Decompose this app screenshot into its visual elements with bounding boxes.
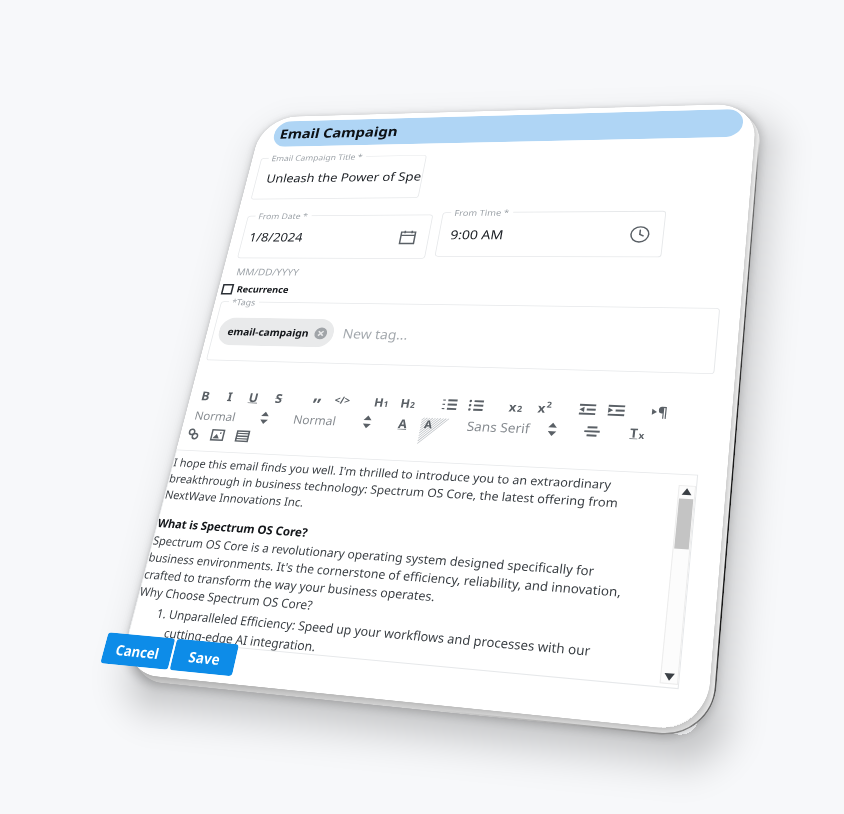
button[interactable]: Format xyxy=(602,400,630,420)
staticText: business environments. It's the cornerst… xyxy=(147,549,622,601)
button[interactable]: Normal xyxy=(292,409,338,429)
staticText: I xyxy=(226,388,235,404)
staticText: *Tags xyxy=(231,296,257,308)
staticText: Email Campaign Title * xyxy=(270,151,364,163)
button[interactable]: Format xyxy=(436,394,463,414)
staticText: Unleash the Power of Spe xyxy=(265,168,423,186)
button[interactable]: Format xyxy=(251,408,277,427)
staticText: x xyxy=(508,398,519,415)
button[interactable]: Format xyxy=(578,420,606,441)
staticText: Spectrum OS Core is a revolutionary oper… xyxy=(151,532,596,580)
staticText: From Date * xyxy=(257,210,310,221)
button[interactable]: Format xyxy=(204,425,230,444)
staticText: cutting-edge AI integration. xyxy=(162,624,318,655)
staticText: x xyxy=(537,399,547,416)
staticText: 1/8/2024 xyxy=(247,229,305,245)
staticText: 1 xyxy=(382,398,390,409)
staticText: A xyxy=(423,417,434,432)
staticText: Normal xyxy=(193,407,238,424)
button[interactable]: Pick date xyxy=(397,229,418,245)
button[interactable]: Format xyxy=(305,390,331,409)
staticText: Sans Serif xyxy=(466,417,531,437)
staticText: Email Campaign xyxy=(278,122,400,143)
button[interactable]: Format xyxy=(329,391,355,410)
button[interactable]: Format xyxy=(193,386,218,405)
staticText: 9:00 AM xyxy=(449,226,505,243)
staticText: Save xyxy=(187,647,222,669)
button[interactable]: Recurrence xyxy=(220,283,291,296)
button[interactable]: Format xyxy=(229,426,255,445)
staticText: 1. Unparalleled Efficiency: Speed up you… xyxy=(155,605,591,660)
button[interactable]: Format xyxy=(646,401,674,422)
button[interactable]: Format xyxy=(415,414,441,434)
button[interactable]: Format xyxy=(573,399,601,419)
staticText: ” xyxy=(311,393,323,411)
staticText: Why Choose Spectrum OS Core? xyxy=(138,583,315,614)
button[interactable]: Format xyxy=(538,419,566,439)
staticText: B xyxy=(200,387,212,404)
staticText: MM/DD/YYYY xyxy=(235,266,301,279)
button[interactable]: Save xyxy=(169,639,239,676)
staticText: NextWave Innovations Inc. xyxy=(163,486,306,510)
staticText: From Time * xyxy=(453,207,511,218)
staticText: x xyxy=(638,429,645,442)
staticText: U xyxy=(247,389,261,405)
staticText: S xyxy=(274,390,285,406)
button[interactable]: Format xyxy=(502,397,529,416)
button[interactable]: Format xyxy=(217,387,243,406)
button[interactable]: email-campaign xyxy=(215,317,337,348)
button[interactable]: Sans Serif xyxy=(465,416,532,438)
button[interactable]: Email Campaign xyxy=(271,109,744,147)
staticText: I hope this email finds you well. I'm th… xyxy=(172,454,613,493)
staticText: ¶ xyxy=(657,403,669,421)
button[interactable]: Pick time xyxy=(629,226,651,243)
button[interactable]: Cancel xyxy=(100,632,175,670)
button[interactable]: Format xyxy=(623,422,651,443)
staticText: Normal xyxy=(292,411,338,429)
staticText: </> xyxy=(333,393,351,407)
staticText: crafted to transform the way your busine… xyxy=(142,566,437,605)
button[interactable]: Format xyxy=(463,395,489,415)
staticText: breakthrough in business technology: Spe… xyxy=(168,470,619,511)
button[interactable]: Scroll xyxy=(659,485,696,685)
button[interactable]: Format xyxy=(354,412,380,431)
staticText: Cancel xyxy=(114,640,162,663)
staticText: New tag... xyxy=(341,325,410,344)
button[interactable]: Format xyxy=(181,424,206,443)
button[interactable]: Normal xyxy=(193,406,238,425)
staticText: 2 xyxy=(546,399,553,410)
button[interactable]: Format xyxy=(241,388,267,406)
staticText: H xyxy=(373,394,385,410)
staticText: 2 xyxy=(516,403,523,415)
button[interactable]: Format xyxy=(390,413,416,433)
staticText: 2 xyxy=(409,399,416,411)
button[interactable]: Format xyxy=(266,389,292,407)
staticText: What is Spectrum OS Core? xyxy=(156,515,310,540)
staticText: T xyxy=(629,424,640,441)
staticText: email-campaign xyxy=(226,325,310,340)
staticText: H xyxy=(399,395,412,411)
staticText: A xyxy=(397,415,409,432)
button[interactable]: Format xyxy=(531,397,558,417)
staticText: Recurrence xyxy=(235,283,291,296)
button[interactable]: Format xyxy=(368,392,395,411)
button[interactable]: Format xyxy=(394,393,421,412)
